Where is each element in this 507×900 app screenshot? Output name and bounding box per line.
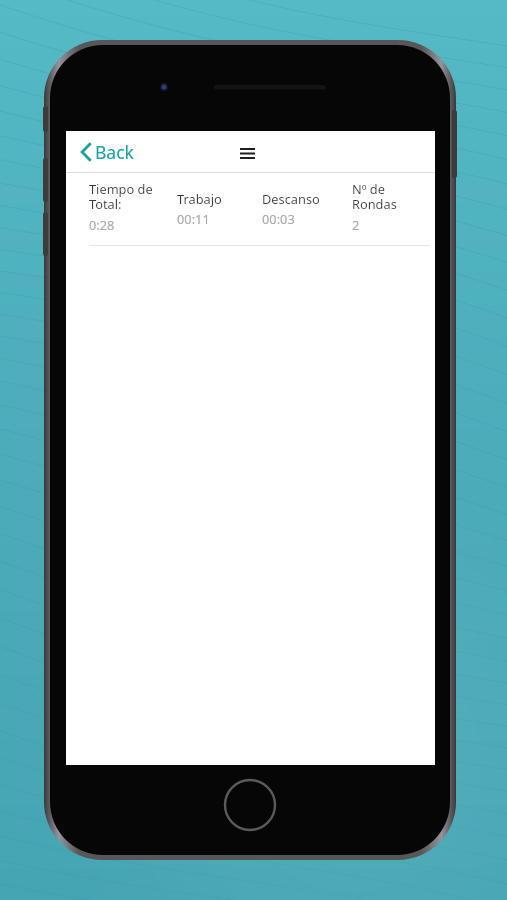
staticText: Nº de Rondas: [352, 180, 397, 213]
staticText: Trabajo: [177, 190, 222, 207]
staticText: Back: [95, 140, 134, 164]
button[interactable]: Descanso: [262, 190, 352, 227]
staticText: 0:28: [89, 216, 115, 233]
button[interactable]: Nº de Rondas: [352, 180, 429, 233]
staticText: 2: [352, 216, 360, 233]
button[interactable]: Tiempo de Total:: [89, 180, 177, 233]
staticText: Tiempo de Total:: [89, 180, 153, 213]
staticText: 00:11: [177, 210, 210, 227]
button[interactable]: Home: [223, 778, 277, 832]
staticText: Descanso: [262, 190, 320, 207]
button[interactable]: Back: [78, 135, 137, 169]
button[interactable]: Trabajo: [177, 190, 262, 227]
staticText: 00:03: [262, 210, 295, 227]
button[interactable]: Menu: [231, 137, 263, 169]
